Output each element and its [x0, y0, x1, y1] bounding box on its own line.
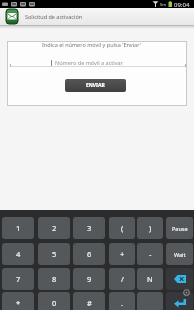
button[interactable]: Número de móvil a activar [10, 53, 186, 66]
button[interactable] [137, 292, 163, 310]
staticText: ENVIAR [86, 82, 105, 89]
button[interactable] [166, 268, 193, 290]
staticText: # [87, 298, 92, 308]
button[interactable]: / [109, 268, 135, 290]
button[interactable]: 9 [73, 268, 105, 290]
button[interactable]: + [109, 243, 135, 265]
button[interactable]: 4 [2, 243, 34, 265]
button[interactable]: 2 [38, 217, 70, 239]
staticText: ) [149, 223, 152, 233]
staticText: * [16, 298, 21, 308]
button[interactable]: N [137, 268, 163, 290]
button[interactable]: 0 [38, 292, 70, 310]
staticText: Wait [174, 251, 186, 258]
staticText: 0 [52, 298, 57, 308]
button[interactable]: ( [109, 217, 135, 239]
button[interactable]: Wait [166, 243, 193, 265]
staticText: 1 [16, 223, 21, 233]
button[interactable]: ENVIAR [65, 79, 126, 92]
button[interactable]: 8 [38, 268, 70, 290]
button[interactable]: 7 [2, 268, 34, 290]
staticText: 7 [16, 274, 21, 284]
button[interactable]: . [109, 292, 135, 310]
staticText: N [147, 274, 153, 284]
staticText: . [121, 298, 124, 308]
button[interactable]: * [2, 292, 34, 310]
button[interactable]: 1 [2, 217, 34, 239]
staticText: Número de móvil a activar [55, 59, 123, 66]
staticText: 9 [87, 274, 92, 284]
staticText: 5m [160, 2, 167, 7]
staticText: 09:04 [174, 1, 190, 9]
staticText: 3 [87, 223, 92, 233]
staticText: Pause [172, 225, 188, 232]
staticText: Indica el número móvil y pulsa 'Enviar' [42, 41, 141, 48]
staticText: 6 [87, 249, 92, 259]
staticText: / [121, 274, 124, 284]
staticText: - [149, 249, 152, 259]
button[interactable]: 3 [73, 217, 105, 239]
staticText: 8 [52, 274, 57, 284]
button[interactable]: ) [137, 217, 163, 239]
staticText: Solicitud de activación [25, 13, 83, 20]
button[interactable]: Pause [166, 217, 193, 239]
button[interactable] [166, 292, 193, 310]
button[interactable]: - [137, 243, 163, 265]
staticText: ( [121, 223, 124, 233]
staticText: 5 [52, 249, 57, 259]
button[interactable]: 6 [73, 243, 105, 265]
staticText: + [120, 249, 125, 259]
staticText: 2 [52, 223, 57, 233]
staticText: 4 [16, 249, 21, 259]
button[interactable]: 5 [38, 243, 70, 265]
button[interactable]: # [73, 292, 105, 310]
